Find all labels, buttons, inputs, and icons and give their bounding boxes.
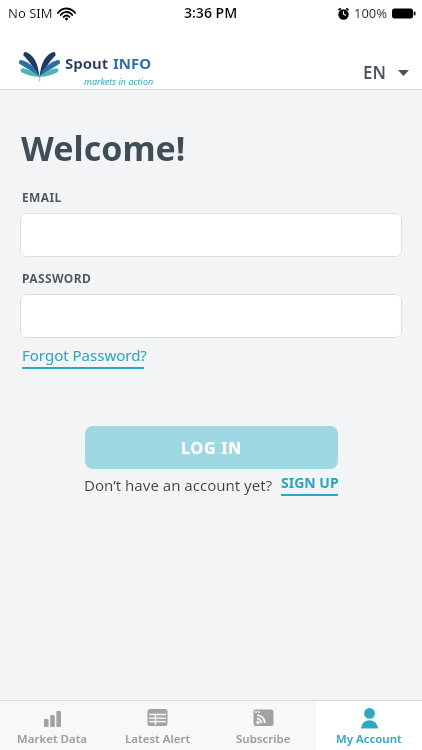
staticText: Don’t have an account yet?: [84, 475, 273, 495]
staticText: EMAIL: [22, 189, 62, 205]
staticText: LOG IN: [181, 437, 243, 459]
staticText: No SIM: [8, 4, 53, 22]
button[interactable]: SIGN UP: [281, 473, 339, 496]
staticText: PASSWORD: [22, 270, 92, 286]
staticText: Forgot Password?: [22, 345, 147, 365]
button[interactable]: EN: [363, 61, 409, 84]
staticText: Market Data: [17, 731, 88, 747]
staticText: markets in action: [84, 75, 154, 87]
staticText: My Account: [336, 731, 402, 747]
button[interactable]: My Account: [316, 701, 422, 750]
button[interactable]: [20, 213, 402, 257]
button[interactable]: [20, 294, 402, 338]
button[interactable]: LOG IN: [85, 426, 338, 469]
staticText: Spout: [65, 53, 109, 73]
button[interactable]: Market Data: [0, 701, 105, 750]
button[interactable]: Forgot Password?: [22, 345, 147, 369]
staticText: EN: [363, 61, 386, 84]
staticText: 3:36 PM: [184, 3, 238, 22]
staticText: 100%: [354, 4, 388, 22]
staticText: SIGN UP: [281, 473, 339, 492]
staticText: Latest Alert: [125, 731, 191, 747]
staticText: Welcome!: [21, 125, 186, 171]
staticText: Subscribe: [236, 731, 291, 747]
staticText: INFO: [113, 53, 152, 73]
button[interactable]: Subscribe: [210, 701, 316, 750]
button[interactable]: Latest Alert: [105, 701, 210, 750]
